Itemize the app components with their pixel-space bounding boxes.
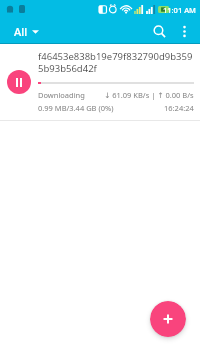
button[interactable]: Pause xyxy=(0,44,200,121)
staticText: f46453e838b19e79f832790d9b3595b93b56d42f xyxy=(38,50,194,75)
button[interactable]: Add download xyxy=(150,301,186,337)
button[interactable]: All xyxy=(10,21,43,42)
button[interactable]: Pause xyxy=(7,70,31,94)
button[interactable]: Search xyxy=(146,18,172,44)
staticText: 11:01 AM xyxy=(163,5,196,15)
staticText: 0.99 MB/3.44 GB (0%) xyxy=(38,103,114,113)
staticText: ↓ 61.09 KB/s | ↑ 0.00 B/s xyxy=(104,90,194,100)
staticText: All xyxy=(14,24,28,39)
staticText: 16:24:24 xyxy=(164,103,194,113)
button[interactable]: More options xyxy=(172,19,196,43)
staticText: Downloading xyxy=(38,90,85,100)
